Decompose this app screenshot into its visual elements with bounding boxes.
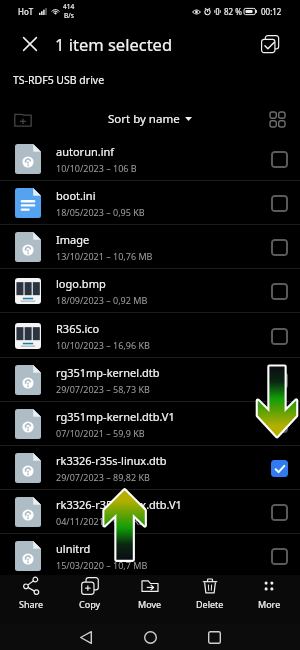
button[interactable]: Close selection — [12, 26, 48, 62]
button[interactable]: Select item — [266, 455, 292, 481]
staticText: 07/10/2021 – 59,9 KB — [56, 427, 145, 439]
button[interactable]: Select item — [266, 367, 292, 393]
staticText: 1 item selected — [55, 33, 173, 55]
staticText: Image — [56, 232, 90, 247]
button[interactable]: autorun.inf — [0, 137, 300, 181]
button[interactable]: New folder — [5, 101, 41, 137]
staticText: Move — [138, 598, 162, 610]
staticText: 18/05/2023 – 0,95 KB — [56, 206, 145, 218]
staticText: B/s — [64, 11, 74, 20]
staticText: 82 % — [224, 6, 242, 17]
button[interactable]: Select item — [266, 323, 292, 349]
staticText: 29/07/2023 – 58,73 KB — [56, 383, 150, 395]
staticText: rg351mp-kernel.dtb — [56, 365, 160, 380]
button[interactable]: Select all — [252, 26, 288, 62]
staticText: Copy — [79, 598, 101, 610]
button[interactable]: Select item — [266, 234, 292, 260]
staticText: 29/07/2023 – 89,82 KB — [56, 471, 150, 483]
button[interactable]: Select item — [266, 411, 292, 437]
button[interactable]: Select item — [266, 190, 292, 216]
staticText: Sort by name — [108, 111, 180, 127]
button[interactable]: boot.ini — [0, 181, 300, 225]
button[interactable]: ulnitrd — [0, 534, 300, 578]
button[interactable]: Recents — [187, 624, 241, 650]
staticText: 13/10/2021 – 10,76 MB — [56, 250, 153, 262]
staticText: ulnitrd — [56, 541, 91, 556]
staticText: More — [258, 598, 281, 610]
button[interactable]: Sort by name — [104, 107, 196, 131]
staticText: 15/03/2020 – 10,7 MB — [56, 559, 148, 571]
staticText: R36S.ico — [56, 321, 100, 336]
button[interactable]: R36S.ico — [0, 314, 300, 358]
staticText: rk3326-r35s-linux.dtb — [56, 453, 167, 468]
button[interactable]: Back — [59, 624, 113, 650]
button[interactable]: rg351mp-kernel.dtb — [0, 358, 300, 402]
button[interactable]: Select item — [266, 146, 292, 172]
button[interactable]: Delete — [181, 577, 239, 622]
staticText: 414 — [63, 2, 75, 11]
staticText: boot.ini — [56, 188, 96, 203]
button[interactable]: Grid view — [259, 101, 295, 137]
button[interactable]: More — [240, 577, 298, 622]
button[interactable]: logo.bmp — [0, 269, 300, 313]
button[interactable]: rk3326-r35s-linux.dtb — [0, 446, 300, 490]
button[interactable]: Move — [121, 577, 179, 622]
staticText: 10/10/2023 – 106 B — [56, 162, 137, 174]
staticText: 00:12 — [261, 6, 282, 17]
staticText: rk3326-r35s-linux.dtb.V1 — [56, 497, 182, 512]
button[interactable]: Select item — [266, 278, 292, 304]
staticText: logo.bmp — [56, 276, 106, 291]
button[interactable]: rg351mp-kernel.dtb.V1 — [0, 402, 300, 446]
button[interactable]: Home — [123, 624, 177, 650]
button[interactable]: Select item — [266, 543, 292, 569]
staticText: Share — [19, 598, 44, 610]
button[interactable]: Copy — [61, 577, 119, 622]
staticText: Delete — [196, 598, 224, 610]
staticText: 04/11/2021 – 95,2 KB — [56, 515, 145, 527]
button[interactable]: Image — [0, 225, 300, 269]
staticText: rg351mp-kernel.dtb.V1 — [56, 409, 175, 424]
staticText: HoT — [18, 6, 34, 17]
button[interactable]: rk3326-r35s-linux.dtb.V1 — [0, 490, 300, 534]
button[interactable]: Select item — [266, 499, 292, 525]
staticText: 18/09/2023 – 0,92 MB — [56, 294, 148, 306]
staticText: autorun.inf — [56, 144, 115, 159]
staticText: 10/10/2023 – 16,96 KB — [56, 339, 150, 351]
button[interactable]: Share — [2, 577, 60, 622]
staticText: TS-RDF5 USB drive — [13, 73, 105, 87]
